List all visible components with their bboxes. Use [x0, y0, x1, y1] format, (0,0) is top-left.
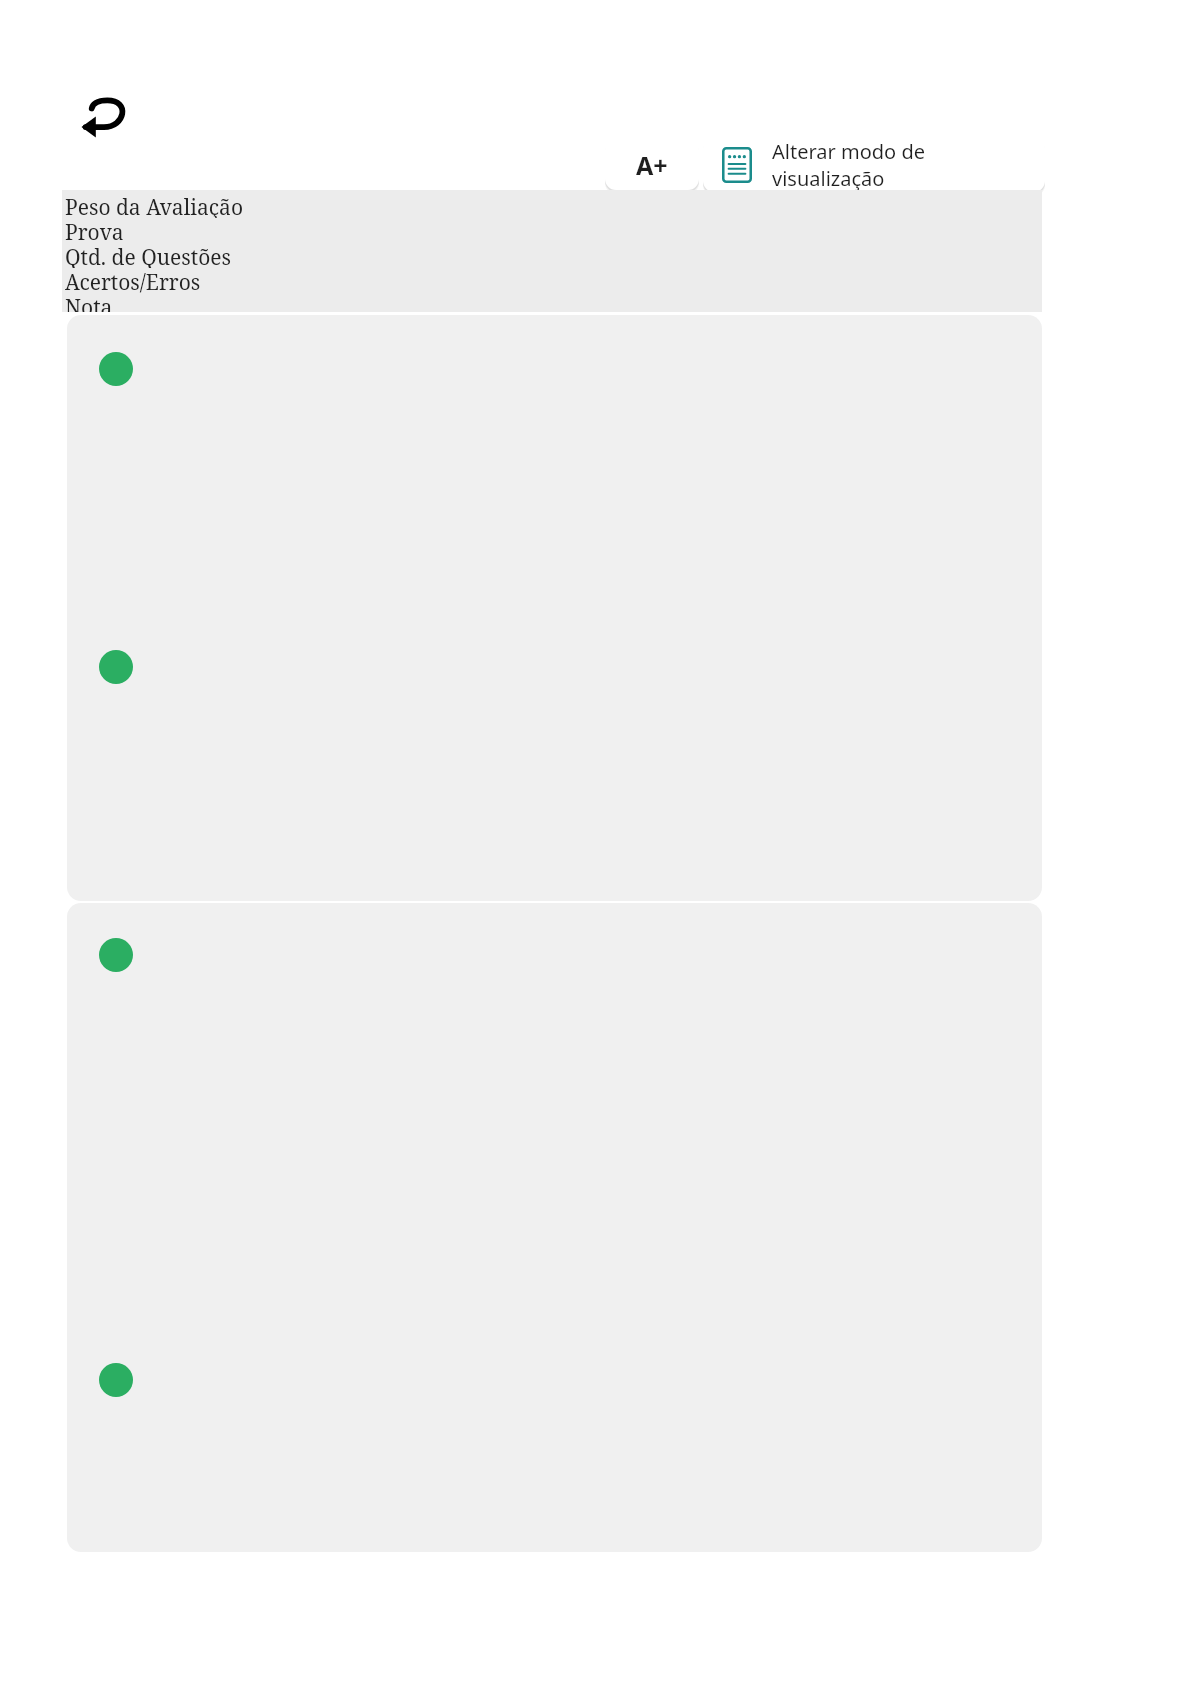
staticText: Prova: [65, 218, 124, 243]
staticText: Peso da Avaliação: [65, 193, 243, 218]
staticText: A+: [636, 148, 668, 182]
button[interactable]: A+: [605, 140, 699, 190]
button[interactable]: Alterar modo de visualização: [703, 138, 1045, 192]
staticText: Nota: [65, 293, 113, 312]
staticText: Alterar modo de visualização: [772, 138, 1029, 192]
button[interactable]: [67, 903, 1042, 1552]
button[interactable]: Voltar: [72, 88, 140, 150]
button[interactable]: [67, 315, 1042, 901]
staticText: Acertos/Erros: [65, 268, 201, 293]
staticText: Qtd. de Questões: [65, 243, 232, 268]
